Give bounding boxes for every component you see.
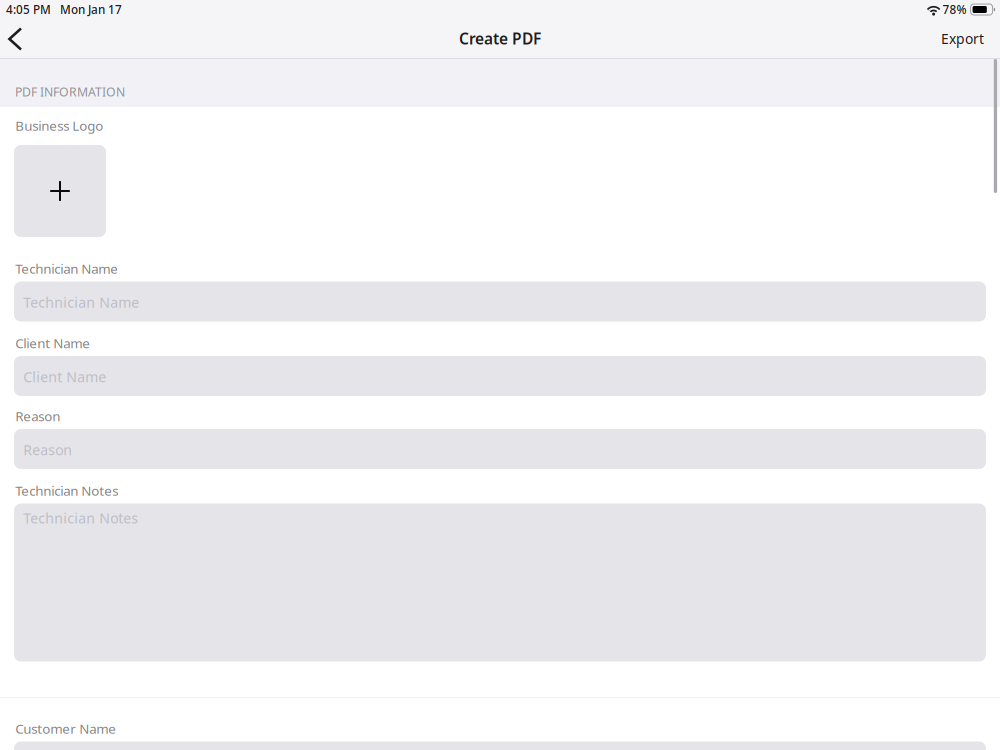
staticText: Technician Notes [23, 508, 138, 528]
staticText: Technician Name [23, 293, 139, 312]
staticText: Client Name [15, 334, 90, 352]
button[interactable]: Back [0, 19, 48, 58]
staticText: 4:05 PM [6, 1, 51, 17]
staticText: Technician Notes [15, 481, 118, 500]
button[interactable]: Add business logo [14, 145, 106, 237]
staticText: Mon Jan 17 [60, 1, 122, 17]
staticText: Reason [23, 440, 72, 459]
staticText: Export [941, 29, 984, 48]
staticText: Business Logo [15, 116, 103, 135]
staticText: PDF INFORMATION [15, 83, 125, 100]
button[interactable]: Export [918, 19, 1000, 58]
staticText: Create PDF [459, 28, 541, 49]
staticText: Technician Name [15, 259, 118, 278]
staticText: Reason [15, 407, 60, 425]
button[interactable]: Technician Name [14, 281, 986, 321]
staticText: Client Name [23, 367, 106, 386]
staticText: 78% [943, 1, 967, 17]
staticText: Customer Name [15, 719, 116, 738]
